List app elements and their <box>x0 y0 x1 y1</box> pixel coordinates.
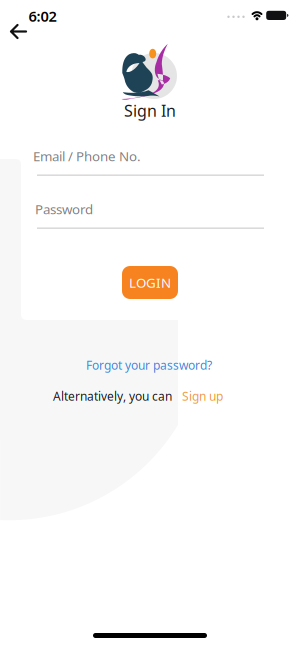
staticText: Email / Phone No. <box>33 147 141 165</box>
button[interactable]: Sign up <box>182 388 223 404</box>
staticText: Sign up <box>182 388 223 404</box>
button[interactable]: Back <box>8 21 29 41</box>
staticText: Sign In <box>124 100 176 121</box>
button[interactable]: Forgot your password? <box>86 357 212 373</box>
staticText: Alternatively, you can <box>53 388 172 404</box>
staticText: LOGIN <box>129 274 171 291</box>
staticText: Password <box>35 200 93 218</box>
staticText: Forgot your password? <box>86 357 212 373</box>
staticText: 6:02 <box>28 6 56 26</box>
button[interactable]: LOGIN <box>122 266 178 299</box>
